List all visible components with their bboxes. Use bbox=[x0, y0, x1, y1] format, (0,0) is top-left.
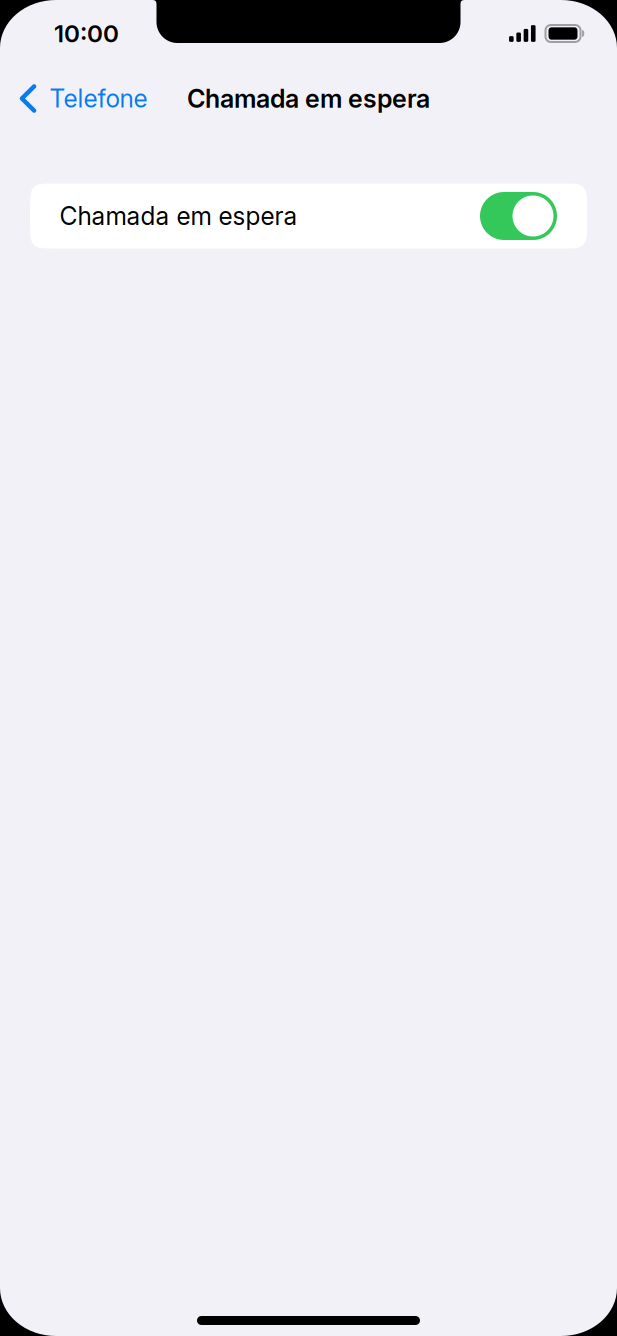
staticText: 10:00 bbox=[54, 19, 119, 48]
staticText: Chamada em espera bbox=[59, 201, 297, 231]
staticText: Chamada em espera bbox=[187, 83, 430, 114]
button[interactable]: Chamada em espera, ativado bbox=[30, 183, 587, 248]
button[interactable]: Telefone bbox=[0, 72, 161, 124]
staticText: Telefone bbox=[49, 84, 147, 113]
